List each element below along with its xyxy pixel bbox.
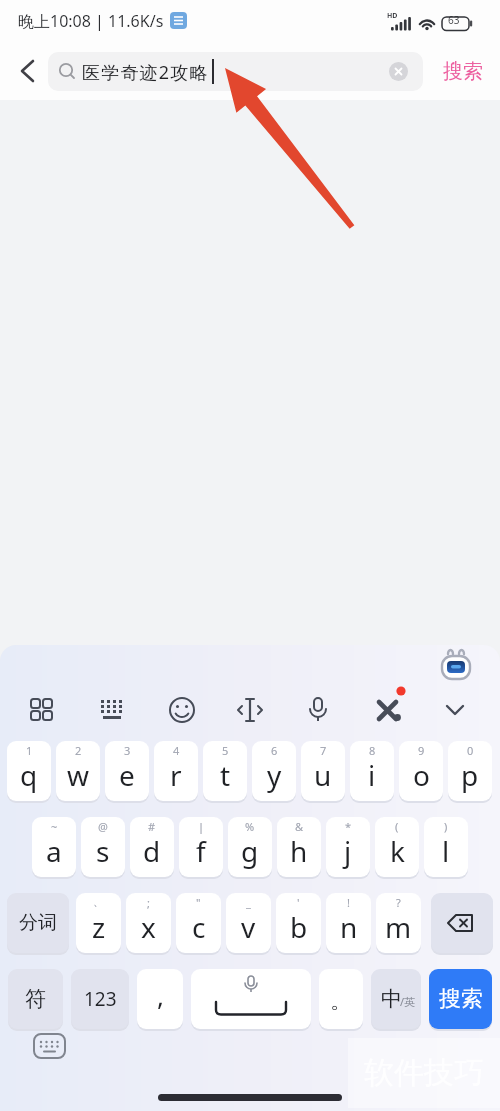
staticText: a xyxy=(46,832,62,870)
staticText: 、 xyxy=(93,895,104,909)
staticText: w xyxy=(67,756,90,794)
button[interactable]: 中 xyxy=(371,969,421,1029)
button[interactable]: | xyxy=(179,817,223,877)
staticText: 1 xyxy=(26,743,33,758)
staticText: 搜索 xyxy=(443,59,483,84)
staticText: 分词 xyxy=(19,911,57,935)
button[interactable]: 医学奇迹2攻略 xyxy=(48,52,423,91)
staticText: _ xyxy=(246,895,251,910)
staticText: 6 xyxy=(271,743,278,758)
staticText: ; xyxy=(147,895,150,910)
staticText: ! xyxy=(347,895,350,910)
button[interactable]: ; xyxy=(126,893,171,953)
staticText: , xyxy=(157,978,164,1013)
staticText: # xyxy=(148,819,156,834)
staticText: s xyxy=(96,832,110,870)
staticText: HD xyxy=(387,11,398,21)
button[interactable]: 7 xyxy=(301,741,345,801)
button[interactable]: 搜索 xyxy=(429,969,492,1029)
staticText: ~ xyxy=(51,819,58,834)
button[interactable] xyxy=(10,52,46,90)
staticText: ' xyxy=(297,895,300,910)
button[interactable]: ! xyxy=(326,893,371,953)
button[interactable]: @ xyxy=(81,817,125,877)
button[interactable]: * xyxy=(326,817,370,877)
button[interactable]: _ xyxy=(226,893,271,953)
staticText: r xyxy=(170,756,182,794)
staticText: t xyxy=(220,756,231,794)
button[interactable]: 9 xyxy=(399,741,443,801)
staticText: 123 xyxy=(84,986,117,1012)
button[interactable]: 分词 xyxy=(7,893,69,953)
button[interactable]: 。 xyxy=(319,969,363,1029)
button[interactable]: ' xyxy=(276,893,321,953)
staticText: /英 xyxy=(400,994,416,1009)
staticText: c xyxy=(192,908,206,946)
button[interactable]: 5 xyxy=(203,741,247,801)
staticText: ? xyxy=(396,895,401,910)
button[interactable]: & xyxy=(277,817,321,877)
button[interactable] xyxy=(389,62,408,81)
staticText: 中 xyxy=(381,986,402,1012)
button[interactable]: , xyxy=(137,969,183,1029)
button[interactable] xyxy=(191,969,311,1029)
staticText: 7 xyxy=(320,743,327,758)
button[interactable]: 123 xyxy=(71,969,129,1029)
button[interactable]: 符 xyxy=(8,969,63,1029)
staticText: x xyxy=(141,908,156,946)
staticText: k xyxy=(390,832,405,870)
staticText: q xyxy=(20,756,38,794)
button[interactable]: 搜索 xyxy=(434,52,492,91)
staticText: 2 xyxy=(75,743,82,758)
staticText: b xyxy=(290,908,308,946)
staticText: p xyxy=(461,756,479,794)
staticText: 3 xyxy=(124,743,131,758)
staticText: v xyxy=(241,908,256,946)
button[interactable]: 1 xyxy=(7,741,51,801)
staticText: " xyxy=(196,895,201,910)
staticText: % xyxy=(245,819,255,834)
button[interactable]: 0 xyxy=(448,741,492,801)
button[interactable]: 2 xyxy=(56,741,100,801)
staticText: n xyxy=(340,908,358,946)
staticText: 晚上10:08 | 11.6K/s xyxy=(18,10,164,32)
staticText: | xyxy=(198,819,205,834)
staticText: 。 xyxy=(330,987,352,1015)
staticText: ) xyxy=(444,819,448,834)
staticText: d xyxy=(143,832,161,870)
button[interactable]: 6 xyxy=(252,741,296,801)
staticText: @ xyxy=(98,819,108,834)
staticText: y xyxy=(267,756,282,794)
staticText: ( xyxy=(395,819,399,834)
staticText: 9 xyxy=(418,743,425,758)
button[interactable]: 8 xyxy=(350,741,394,801)
button[interactable]: % xyxy=(228,817,272,877)
staticText: 搜索 xyxy=(439,985,483,1013)
staticText: 8 xyxy=(369,743,376,758)
staticText: o xyxy=(413,756,430,794)
button[interactable]: ( xyxy=(375,817,419,877)
button[interactable]: # xyxy=(130,817,174,877)
staticText: 符 xyxy=(25,986,46,1012)
staticText: l xyxy=(442,832,450,870)
button[interactable]: 、 xyxy=(76,893,121,953)
staticText: 63 xyxy=(448,13,460,27)
staticText: 5 xyxy=(222,743,229,758)
staticText: 0 xyxy=(467,743,474,758)
button[interactable]: ~ xyxy=(32,817,76,877)
staticText: g xyxy=(241,832,259,870)
staticText: e xyxy=(119,756,135,794)
button[interactable]: " xyxy=(176,893,221,953)
staticText: z xyxy=(92,908,106,946)
button[interactable] xyxy=(431,893,493,953)
staticText: 医学奇迹2攻略 xyxy=(82,60,209,85)
button[interactable]: ) xyxy=(424,817,468,877)
staticText: j xyxy=(344,832,352,870)
staticText: 4 xyxy=(173,743,180,758)
button[interactable]: ? xyxy=(376,893,421,953)
button[interactable]: 4 xyxy=(154,741,198,801)
staticText: u xyxy=(314,756,332,794)
staticText: & xyxy=(295,819,304,834)
button[interactable]: 3 xyxy=(105,741,149,801)
